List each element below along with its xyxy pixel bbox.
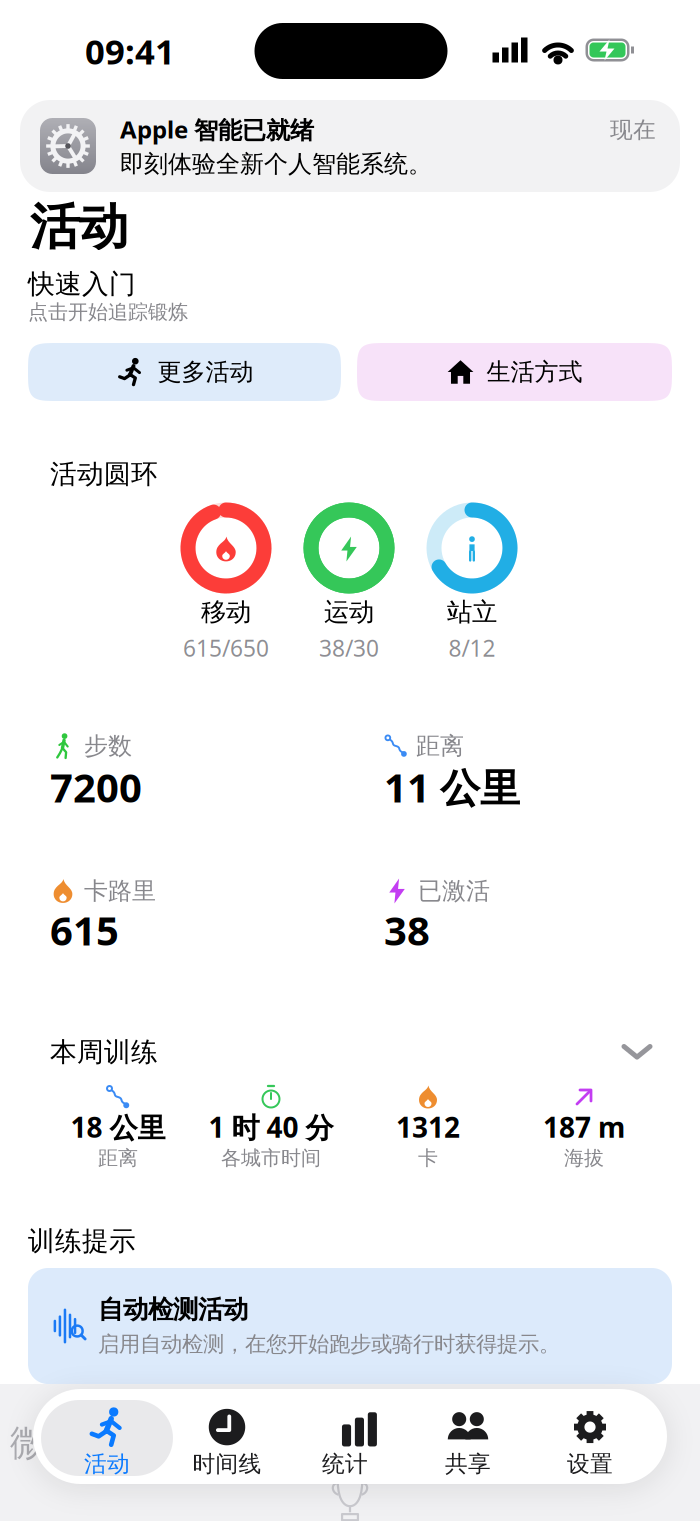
staticText: 11 公里 bbox=[384, 760, 520, 813]
staticText: 187 m bbox=[543, 1108, 625, 1146]
button[interactable]: 生活方式 bbox=[357, 343, 672, 401]
staticText: 38/30 bbox=[319, 633, 379, 663]
staticText: 09:41 bbox=[85, 28, 175, 74]
staticText: Apple 智能已就绪 bbox=[120, 113, 314, 145]
staticText: 活动 bbox=[30, 197, 128, 257]
staticText: 站立 bbox=[447, 596, 497, 627]
staticText: 运动 bbox=[324, 596, 374, 627]
staticText: 设置 bbox=[567, 1450, 613, 1478]
staticText: 活动 bbox=[84, 1450, 130, 1478]
button[interactable]: 更多活动 bbox=[28, 343, 341, 401]
button[interactable]: 统计 bbox=[287, 1399, 403, 1485]
staticText: 时间线 bbox=[192, 1450, 261, 1478]
staticText: 18 公里 bbox=[70, 1108, 165, 1146]
staticText: 生活方式 bbox=[486, 357, 582, 387]
staticText: 活动圆环 bbox=[50, 458, 158, 490]
staticText: 步数 bbox=[84, 731, 132, 761]
button[interactable]: 展开 bbox=[622, 1044, 652, 1059]
button[interactable]: 自动检测活动 bbox=[28, 1268, 672, 1384]
staticText: 自动检测活动 bbox=[98, 1294, 248, 1325]
staticText: 更多活动 bbox=[157, 357, 253, 387]
staticText: 现在 bbox=[610, 116, 656, 144]
staticText: 1 时 40 分 bbox=[208, 1108, 333, 1146]
staticText: 615 bbox=[50, 903, 119, 956]
staticText: 统计 bbox=[322, 1450, 368, 1478]
button[interactable]: 设置 bbox=[532, 1399, 648, 1485]
staticText: 微 bbox=[10, 1421, 46, 1465]
button[interactable]: 共享 bbox=[410, 1399, 526, 1485]
staticText: 快速入门 bbox=[28, 268, 136, 300]
staticText: 已激活 bbox=[418, 876, 490, 906]
button[interactable]: 时间线 bbox=[169, 1399, 285, 1485]
staticText: 共享 bbox=[445, 1450, 491, 1478]
staticText: 距离 bbox=[98, 1146, 138, 1170]
button[interactable]: Apple 智能已就绪 bbox=[20, 100, 680, 192]
staticText: 训练提示 bbox=[28, 1225, 136, 1257]
staticText: 海拔 bbox=[564, 1146, 604, 1170]
staticText: 移动 bbox=[201, 596, 251, 627]
staticText: 1312 bbox=[396, 1108, 460, 1146]
button[interactable]: 活动 bbox=[49, 1399, 165, 1485]
staticText: 卡 bbox=[418, 1146, 438, 1170]
staticText: 本周训练 bbox=[50, 1036, 158, 1068]
staticText: 距离 bbox=[416, 731, 464, 761]
staticText: 点击开始追踪锻炼 bbox=[28, 300, 188, 324]
staticText: 615/650 bbox=[183, 633, 269, 663]
staticText: 即刻体验全新个人智能系统。 bbox=[120, 149, 432, 179]
staticText: 卡路里 bbox=[84, 876, 156, 906]
staticText: 7200 bbox=[50, 760, 142, 813]
staticText: 各城市时间 bbox=[221, 1146, 321, 1170]
staticText: 38 bbox=[384, 903, 430, 956]
staticText: 8/12 bbox=[448, 633, 495, 663]
staticText: 启用自动检测，在您开始跑步或骑行时获得提示。 bbox=[98, 1331, 560, 1357]
